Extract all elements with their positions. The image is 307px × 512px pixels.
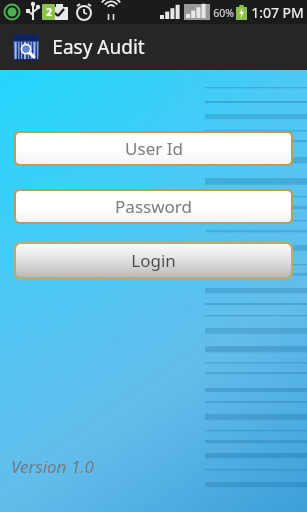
staticText: 2 xyxy=(46,5,52,19)
staticText: Easy Audit xyxy=(52,34,145,60)
staticText: Password xyxy=(115,195,192,218)
staticText: 1:07 PM xyxy=(251,3,304,22)
button[interactable]: Login xyxy=(16,244,291,277)
staticText: Version 1.0 xyxy=(11,455,94,478)
staticText: User Id xyxy=(125,137,183,160)
staticText: Login xyxy=(131,249,176,272)
button[interactable]: User Id xyxy=(16,133,291,164)
other: Easy Audit app icon xyxy=(13,34,39,60)
button[interactable]: Password xyxy=(16,191,291,222)
staticText: 60% xyxy=(213,6,234,20)
